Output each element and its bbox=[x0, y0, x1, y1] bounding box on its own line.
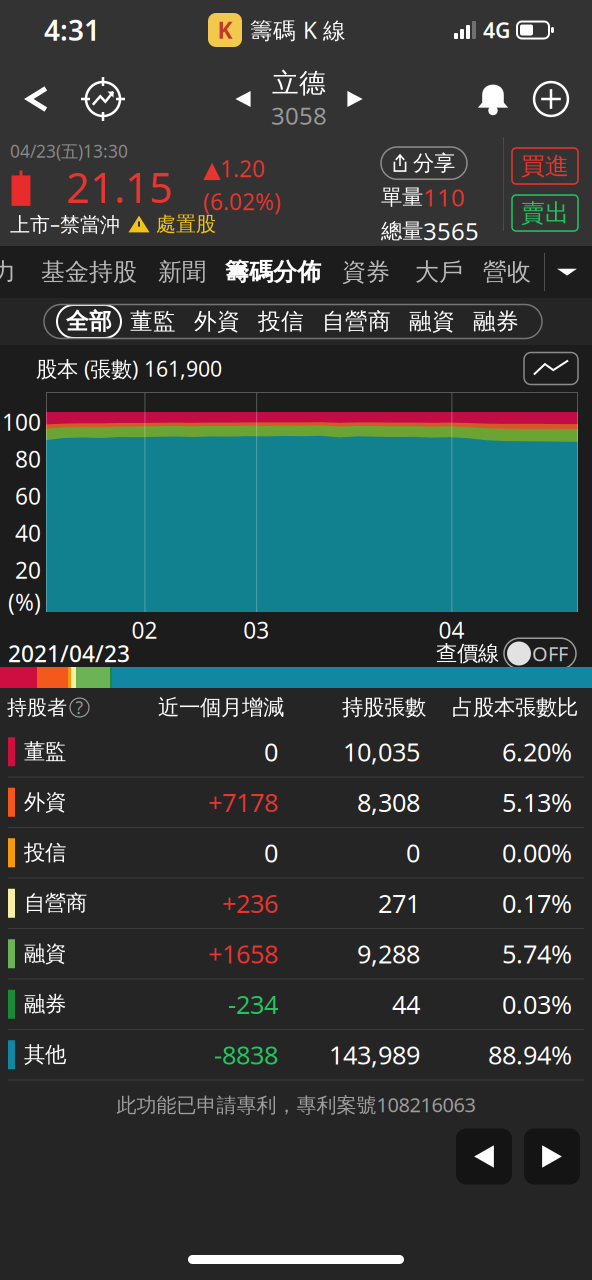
staticText: 271 bbox=[378, 886, 420, 920]
staticText: 持股張數 bbox=[342, 694, 426, 721]
staticText: 投信 bbox=[258, 308, 304, 335]
staticText: 上市–禁當沖 bbox=[10, 211, 120, 237]
staticText: OFF bbox=[532, 640, 568, 667]
staticText: 0 bbox=[264, 836, 278, 869]
staticText: 立德 bbox=[272, 67, 326, 99]
button[interactable]: Alerts bbox=[470, 76, 516, 122]
button[interactable]: 其他 bbox=[0, 1030, 592, 1080]
button[interactable]: 投信 bbox=[0, 828, 592, 878]
button[interactable]: More sections bbox=[544, 246, 590, 298]
staticText: 03 bbox=[243, 615, 269, 645]
button[interactable]: 基金持股 bbox=[16, 246, 137, 298]
staticText: 籌碼分佈 bbox=[225, 257, 321, 287]
button[interactable]: Price line toggle bbox=[504, 638, 576, 669]
staticText: 董監 bbox=[24, 739, 66, 765]
staticText: 董監 bbox=[130, 308, 176, 335]
staticText: 大戶 bbox=[415, 257, 463, 287]
staticText: 40 bbox=[15, 518, 41, 548]
staticText: 買進 bbox=[521, 151, 569, 181]
staticText: 單量 bbox=[381, 184, 423, 210]
staticText: 自營商 bbox=[24, 890, 87, 916]
staticText: 0.17% bbox=[502, 886, 572, 920]
button[interactable]: 新聞 bbox=[137, 246, 206, 298]
staticText: 資券 bbox=[342, 257, 390, 287]
staticText: 營收 bbox=[483, 257, 531, 287]
staticText: 5.74% bbox=[502, 937, 572, 970]
button[interactable]: 營收 bbox=[463, 246, 531, 298]
staticText: 3058 bbox=[271, 99, 327, 131]
staticText: 5.13% bbox=[502, 785, 572, 819]
button[interactable]: Chart tools bbox=[78, 74, 128, 124]
staticText: 外資 bbox=[24, 789, 66, 815]
staticText: 新聞 bbox=[158, 257, 206, 287]
staticText: 籌碼 K 線 bbox=[250, 15, 346, 45]
staticText: 21.15 bbox=[66, 160, 173, 214]
button[interactable]: 全部 bbox=[57, 305, 121, 338]
button[interactable]: 外資 bbox=[0, 777, 592, 828]
staticText: 融資 bbox=[409, 308, 455, 335]
staticText: 9,288 bbox=[357, 937, 420, 970]
staticText: 80 bbox=[15, 444, 41, 474]
staticText: 04 bbox=[438, 615, 464, 645]
staticText: 外資 bbox=[194, 308, 240, 335]
button[interactable]: 籌碼分佈 bbox=[206, 246, 321, 298]
staticText: 融券 bbox=[24, 991, 66, 1017]
staticText: 分享 bbox=[413, 150, 455, 176]
staticText: 融券 bbox=[473, 308, 519, 335]
staticText: -8838 bbox=[214, 1038, 278, 1071]
staticText: ? bbox=[75, 696, 83, 719]
button[interactable]: Add bbox=[528, 76, 574, 122]
staticText: 自營商 bbox=[322, 308, 391, 335]
button[interactable]: 投信 bbox=[249, 305, 313, 338]
staticText: K bbox=[217, 15, 232, 45]
button[interactable]: 董監 bbox=[121, 305, 185, 338]
staticText: +7178 bbox=[208, 785, 278, 819]
staticText: 持股者 bbox=[7, 695, 67, 720]
staticText: 占股本張數比 bbox=[452, 694, 578, 721]
button[interactable]: 外資 bbox=[185, 305, 249, 338]
staticText: 總量 bbox=[381, 218, 423, 244]
staticText: 60 bbox=[15, 481, 41, 511]
button[interactable]: 買進 bbox=[512, 148, 578, 184]
button[interactable]: Chart type bbox=[524, 352, 578, 384]
button[interactable]: Previous stock bbox=[226, 79, 260, 119]
button[interactable]: 力 bbox=[0, 246, 16, 298]
staticText: 0.00% bbox=[502, 836, 572, 869]
staticText: 6.20% bbox=[502, 735, 572, 768]
button[interactable]: 自營商 bbox=[313, 305, 400, 338]
button[interactable]: 資券 bbox=[321, 246, 390, 298]
staticText: -234 bbox=[228, 987, 278, 1021]
button[interactable]: 董監 bbox=[0, 727, 592, 777]
staticText: (6.02%) bbox=[203, 186, 281, 217]
button[interactable]: 賣出 bbox=[512, 195, 578, 231]
staticText: 此功能已申請專利，專利案號108216063 bbox=[116, 1091, 475, 1118]
staticText: 基金持股 bbox=[41, 257, 137, 287]
staticText: ▲1.20 bbox=[203, 153, 265, 183]
button[interactable]: 融券 bbox=[0, 979, 592, 1030]
staticText: 查價線 bbox=[436, 640, 499, 667]
button[interactable]: Back bbox=[20, 77, 54, 121]
button[interactable]: 自營商 bbox=[0, 878, 592, 929]
staticText: 0 bbox=[264, 735, 278, 768]
staticText: 10,035 bbox=[343, 735, 420, 768]
button[interactable]: 融券 bbox=[464, 305, 528, 338]
button[interactable]: 融資 bbox=[400, 305, 464, 338]
staticText: 143,989 bbox=[329, 1038, 420, 1071]
staticText: 110 bbox=[423, 181, 465, 213]
button[interactable]: 融資 bbox=[0, 929, 592, 979]
staticText: (%) bbox=[8, 587, 41, 617]
staticText: +236 bbox=[222, 886, 278, 920]
staticText: 賣出 bbox=[521, 198, 569, 228]
button[interactable]: Previous page bbox=[456, 1128, 512, 1184]
staticText: 04/23(五)13:30 bbox=[10, 139, 128, 162]
button[interactable]: 大戶 bbox=[390, 246, 463, 298]
button[interactable]: Next page bbox=[524, 1128, 580, 1184]
button[interactable]: Next stock bbox=[338, 79, 372, 119]
staticText: 0.03% bbox=[502, 987, 572, 1021]
staticText: 2021/04/23 bbox=[8, 638, 130, 668]
staticText: +1658 bbox=[208, 937, 278, 970]
staticText: 02 bbox=[131, 615, 157, 645]
button[interactable]: 分享 bbox=[381, 147, 467, 179]
staticText: 3565 bbox=[423, 215, 479, 247]
staticText: 全部 bbox=[66, 308, 112, 335]
